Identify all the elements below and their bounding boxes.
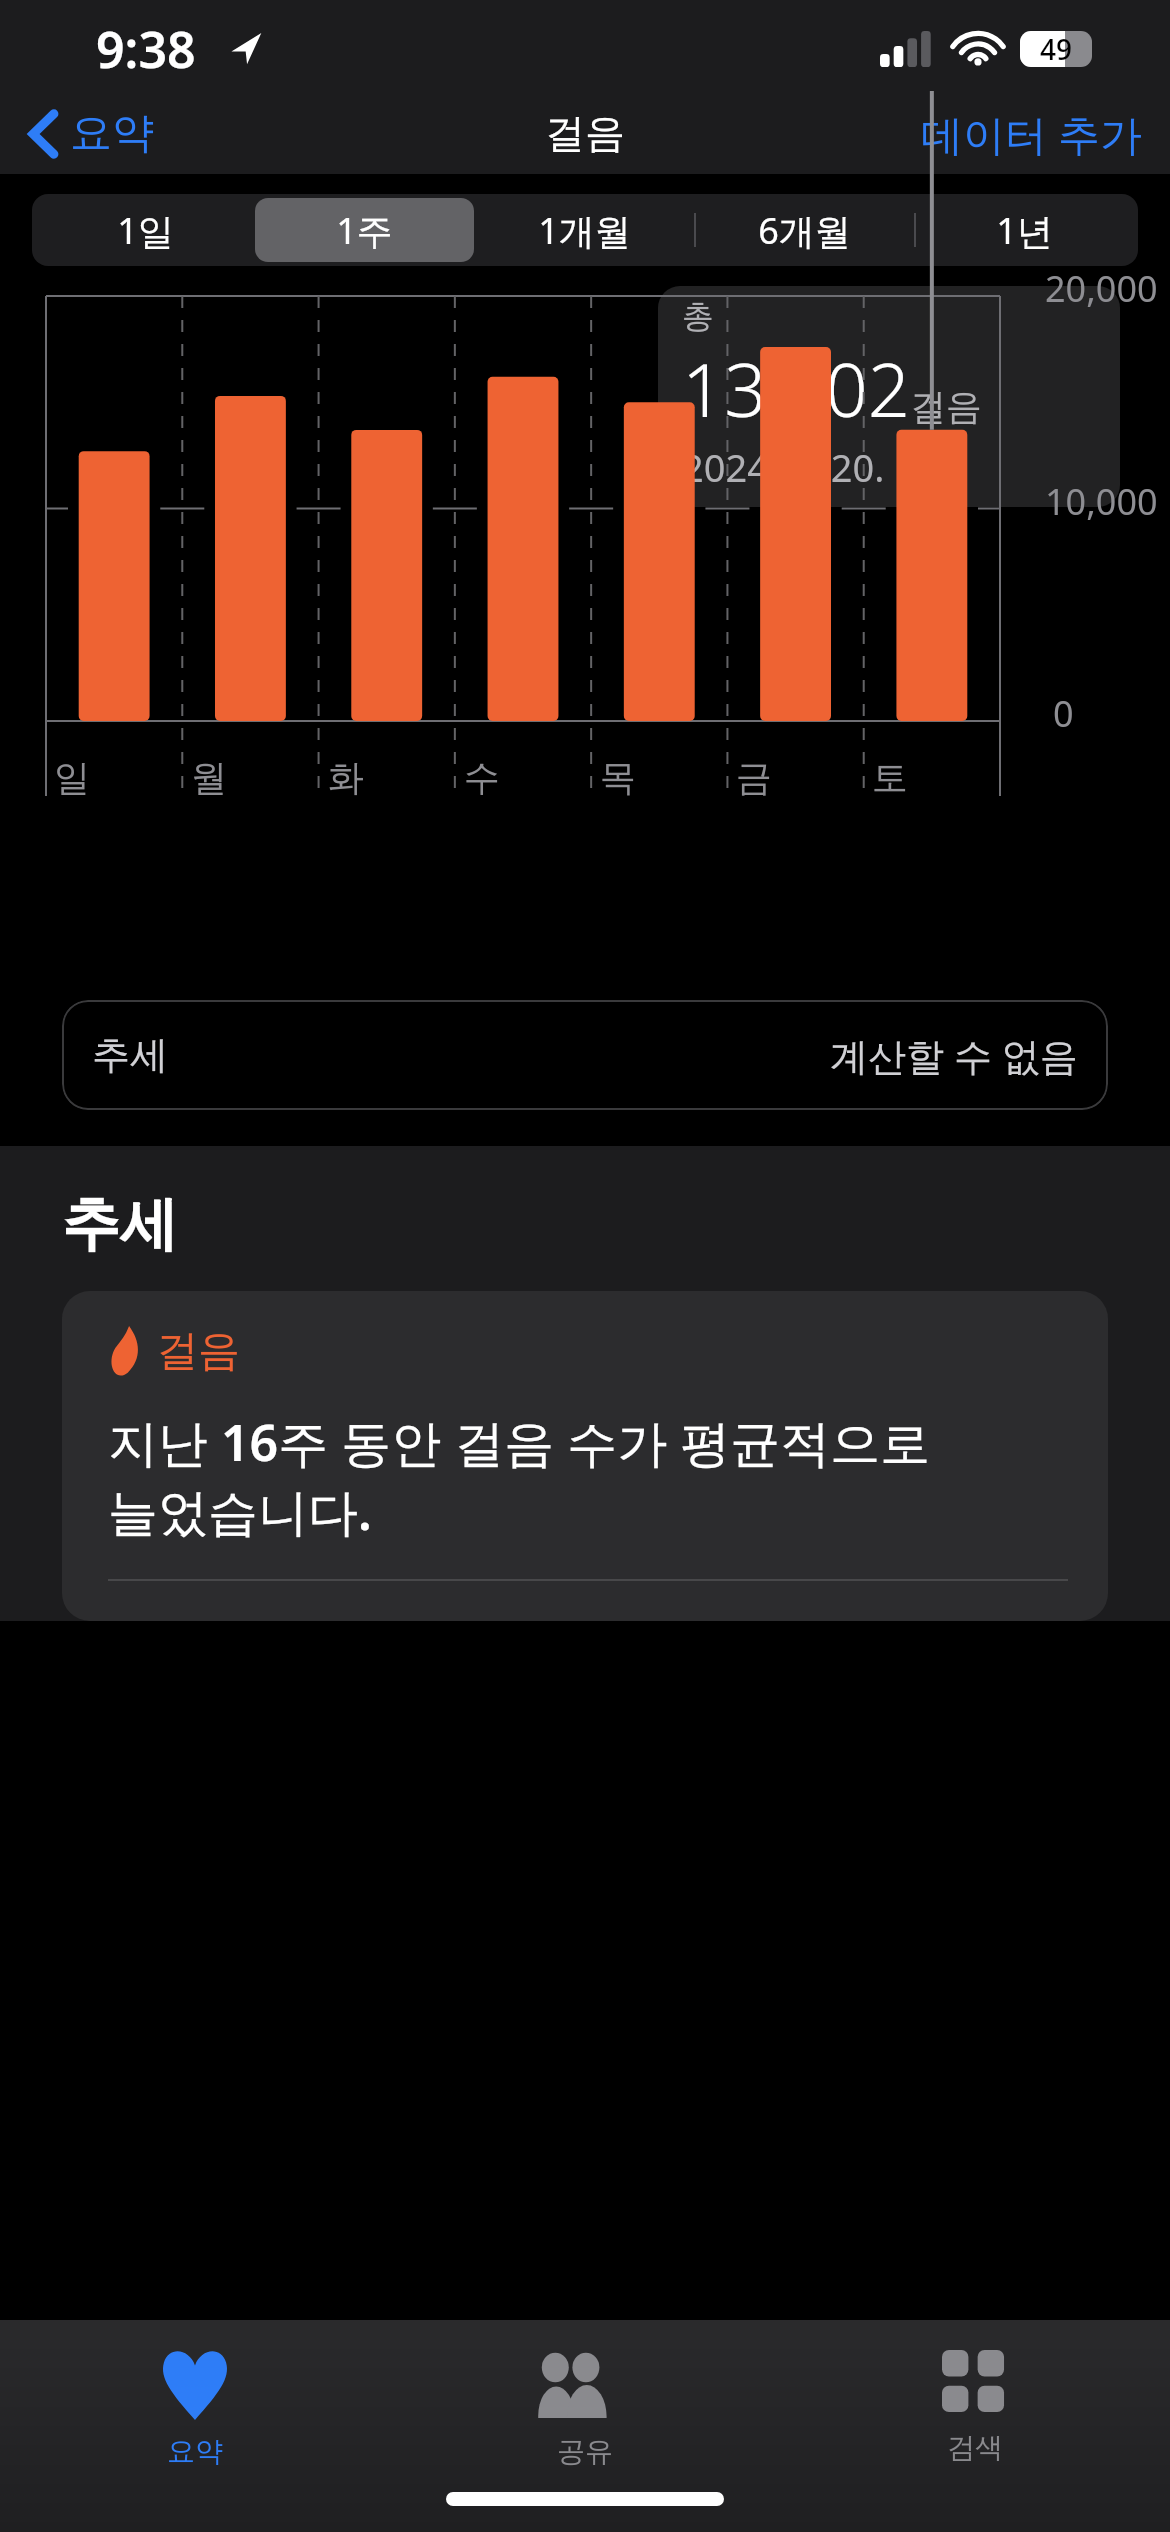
other: 요약 xyxy=(158,2350,232,2420)
staticText: 13,702 xyxy=(682,338,910,439)
button[interactable]: 검색 xyxy=(780,2342,1170,2473)
button[interactable]: 요약 xyxy=(24,99,160,168)
staticText: 일 xyxy=(54,755,90,800)
staticText: 공유 xyxy=(557,2434,613,2469)
staticText: 수 xyxy=(464,755,500,800)
staticText: 요약 xyxy=(167,2434,223,2469)
staticText: 계산할 수 없음 xyxy=(830,1029,1078,1081)
staticText: 걸음 xyxy=(910,384,982,429)
staticText: 10,000 xyxy=(1045,477,1158,526)
staticText: 요약 xyxy=(70,107,154,160)
staticText: 금 xyxy=(736,755,772,800)
staticText: 검색 xyxy=(947,2430,1003,2465)
staticText: 2024. 7. 20. xyxy=(682,441,885,493)
staticText: 지난 16주 동안 걸음 수가 평균적으로 늘었습니다. xyxy=(108,1408,931,1545)
button[interactable]: 공유 xyxy=(390,2342,780,2477)
staticText: 1일 xyxy=(117,206,174,255)
button[interactable]: 걸음 xyxy=(62,1291,1108,1621)
other: 공유 xyxy=(540,2350,630,2420)
staticText: 0 xyxy=(1053,689,1074,738)
button[interactable]: 요약 xyxy=(0,2342,390,2477)
staticText: 1개월 xyxy=(538,206,631,255)
staticText: 걸음 xyxy=(545,108,625,158)
staticText: 총 xyxy=(682,296,714,336)
staticText: 1주 xyxy=(336,206,393,255)
staticText: 걸음 xyxy=(156,1325,240,1378)
button[interactable]: 1주 xyxy=(255,198,474,262)
staticText: 추세 xyxy=(62,1188,178,1261)
staticText: 9:38 xyxy=(96,15,196,83)
staticText: 6개월 xyxy=(758,206,851,255)
staticText: 49 xyxy=(1040,30,1073,68)
button[interactable]: 1개월 xyxy=(474,198,694,262)
button[interactable]: 1년 xyxy=(914,198,1134,262)
staticText: 목 xyxy=(600,755,636,800)
staticText: 화 xyxy=(328,755,364,800)
button[interactable]: 데이터 추가 xyxy=(915,97,1148,170)
staticText: 추세 xyxy=(92,1031,168,1079)
button[interactable]: 6개월 xyxy=(694,198,914,262)
staticText: 20,000 xyxy=(1045,264,1158,313)
staticText: 토 xyxy=(872,755,908,800)
staticText: 월 xyxy=(191,755,227,800)
staticText: 1년 xyxy=(996,206,1053,255)
button[interactable]: 1일 xyxy=(36,198,255,262)
other: 검색 xyxy=(942,2350,1008,2416)
button[interactable]: 추세 xyxy=(62,1000,1108,1110)
